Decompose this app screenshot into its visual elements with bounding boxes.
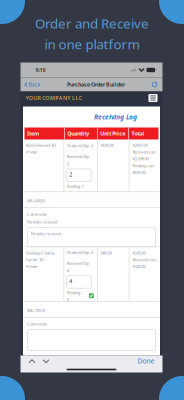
staticText: $2097.00 bbox=[132, 142, 147, 148]
staticText: 2 bbox=[67, 161, 69, 166]
staticText: Partially received bbox=[27, 219, 57, 225]
staticText: YOUR COMPANY LLC bbox=[25, 94, 82, 102]
staticText: in one platform bbox=[44, 35, 139, 53]
staticText: Back bbox=[28, 81, 40, 88]
staticText: Fan for 3D bbox=[26, 257, 44, 262]
button[interactable]: Back bbox=[20, 79, 40, 90]
staticText: ABS Filament 3D bbox=[26, 142, 56, 148]
staticText: Quantity bbox=[67, 130, 89, 137]
staticText: Received Qty: bbox=[67, 154, 90, 159]
staticText: Comments bbox=[27, 321, 47, 326]
staticText: Order and Receive bbox=[35, 14, 149, 32]
staticText: SKU-75519 bbox=[27, 308, 45, 313]
staticText: Done bbox=[137, 357, 154, 365]
staticText: $320.00 bbox=[132, 264, 145, 269]
staticText: Item bbox=[27, 130, 39, 137]
staticText: SKU-64525 bbox=[27, 198, 45, 203]
staticText: 4 bbox=[69, 278, 72, 285]
staticText: Partially received bbox=[30, 231, 60, 236]
staticText: Comments bbox=[27, 211, 47, 217]
staticText: $699.00 bbox=[132, 170, 145, 175]
staticText: Printer bbox=[26, 264, 38, 269]
staticText: 0 bbox=[67, 297, 69, 302]
staticText: 4 bbox=[67, 268, 69, 273]
staticText: $699.00 bbox=[101, 142, 114, 148]
staticText: 2 bbox=[69, 171, 72, 178]
staticText: Pending: 1 bbox=[67, 183, 84, 189]
staticText: $80.00 bbox=[101, 250, 112, 255]
staticText: Receiving Log bbox=[94, 113, 137, 121]
staticText: Pending cost: bbox=[132, 163, 154, 168]
button[interactable]: Menu bbox=[148, 94, 162, 102]
staticText: 9:10 bbox=[35, 66, 45, 74]
button[interactable]: Done bbox=[137, 354, 162, 368]
staticText: Pending: bbox=[67, 290, 81, 295]
staticText: $3,398.00 bbox=[132, 156, 148, 161]
staticText: Total bbox=[131, 130, 144, 137]
staticText: Received Qty: bbox=[67, 260, 90, 266]
staticText: Printer bbox=[26, 149, 38, 155]
staticText: Purchase Order Builder bbox=[67, 81, 125, 88]
button[interactable]: Previous field bbox=[20, 355, 35, 366]
staticText: Received cost: bbox=[132, 149, 156, 155]
staticText: Ordered Qty: 3 bbox=[67, 143, 93, 148]
staticText: Received cost: bbox=[132, 257, 156, 262]
button[interactable]: Next field bbox=[35, 355, 49, 366]
staticText: Unit Price bbox=[100, 130, 125, 137]
staticText: Desktop Cooling bbox=[26, 250, 54, 255]
staticText: Ordered Qty: 4 bbox=[67, 250, 93, 255]
staticText: $320.00 bbox=[132, 250, 145, 255]
button[interactable]: Refresh bbox=[151, 79, 162, 89]
